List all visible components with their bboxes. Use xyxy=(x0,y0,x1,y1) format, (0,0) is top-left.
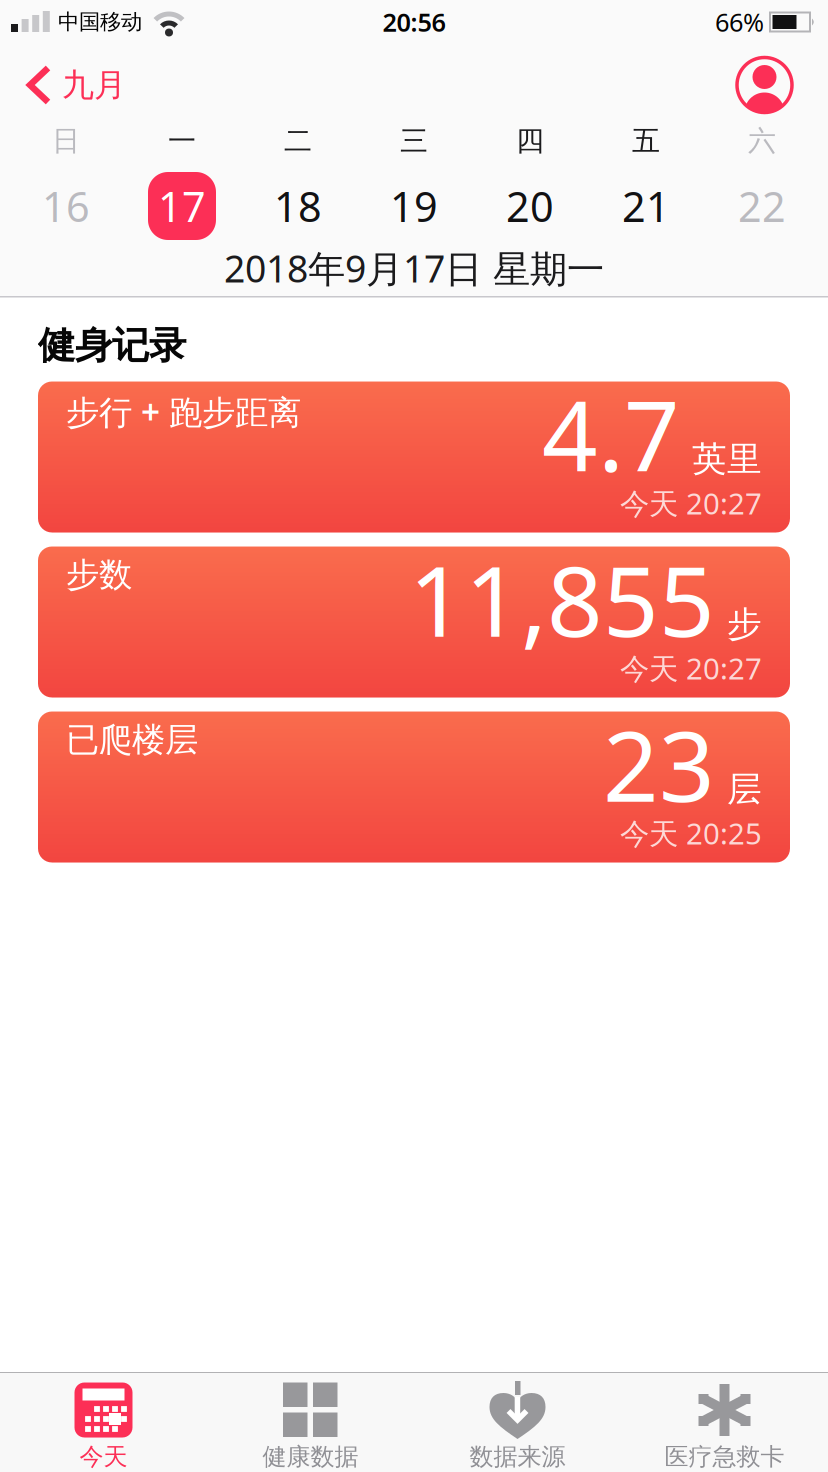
staticText: 日 xyxy=(52,124,80,158)
staticText: 步数 xyxy=(66,554,132,595)
staticText: 四 xyxy=(516,124,544,158)
staticText: 一 xyxy=(168,124,196,158)
button[interactable]: 数据来源 xyxy=(414,1381,621,1471)
staticText: 20:56 xyxy=(382,5,445,39)
staticText: 医疗急救卡 xyxy=(664,1442,784,1471)
button[interactable] xyxy=(737,57,828,112)
staticText: 23 xyxy=(603,699,715,828)
staticText: 健身记录 xyxy=(38,323,186,368)
button[interactable]: 九月 xyxy=(0,64,126,106)
button[interactable]: 21 xyxy=(588,166,704,246)
staticText: 步 xyxy=(727,603,762,645)
staticText: 今天 20:27 xyxy=(620,483,762,522)
staticText: 今天 20:27 xyxy=(620,648,762,687)
button[interactable]: 已爬楼层 xyxy=(38,711,790,862)
staticText: 21 xyxy=(622,179,670,233)
staticText: 数据来源 xyxy=(469,1442,565,1471)
staticText: 层 xyxy=(727,768,762,810)
staticText: 九月 xyxy=(62,65,126,105)
staticText: 16 xyxy=(42,179,90,233)
staticText: 中国移动 xyxy=(58,9,142,35)
staticText: 五 xyxy=(632,124,660,158)
staticText: 11,855 xyxy=(409,534,715,663)
staticText: 英里 xyxy=(692,438,762,480)
staticText: 已爬楼层 xyxy=(66,719,198,760)
button[interactable]: 医疗急救卡 xyxy=(621,1381,828,1471)
button[interactable]: 今天 xyxy=(0,1381,207,1471)
button[interactable]: 步行 + 跑步距离 xyxy=(38,381,790,532)
button[interactable]: 20 xyxy=(472,166,588,246)
staticText: 2018年9月17日 星期一 xyxy=(224,243,604,293)
staticText: 4.7 xyxy=(542,369,680,498)
staticText: 健康数据 xyxy=(262,1442,358,1471)
staticText: 二 xyxy=(284,124,312,158)
button[interactable]: 健康数据 xyxy=(207,1381,414,1471)
staticText: 18 xyxy=(274,179,322,233)
staticText: 三 xyxy=(400,124,428,158)
staticText: 66% xyxy=(715,5,764,39)
staticText: 今天 20:25 xyxy=(620,813,762,852)
staticText: 19 xyxy=(390,179,438,233)
button[interactable]: 16 xyxy=(8,166,124,246)
staticText: 步行 + 跑步距离 xyxy=(66,389,301,434)
staticText: 20 xyxy=(506,179,554,233)
button[interactable]: 22 xyxy=(704,166,820,246)
staticText: 今天 xyxy=(79,1442,127,1471)
staticText: 17 xyxy=(158,179,206,233)
button[interactable]: 19 xyxy=(356,166,472,246)
button[interactable]: 18 xyxy=(240,166,356,246)
staticText: 六 xyxy=(748,124,776,158)
button[interactable]: 17 xyxy=(124,166,240,246)
staticText: 22 xyxy=(738,179,786,233)
button[interactable]: 步数 xyxy=(38,546,790,697)
